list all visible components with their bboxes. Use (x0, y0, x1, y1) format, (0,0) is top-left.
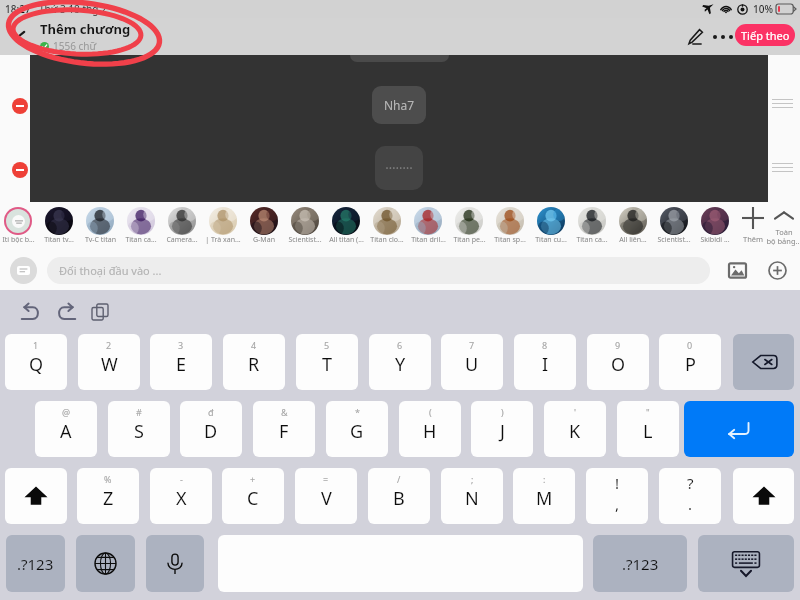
button[interactable]: " (617, 401, 679, 457)
button[interactable]: @ (35, 401, 97, 457)
button[interactable]: Đối thoại đầu vào ... (47, 257, 710, 284)
button[interactable]: Insert image (724, 257, 750, 283)
staticText: W (101, 352, 118, 377)
button[interactable] (332, 207, 360, 235)
staticText: Thêm (743, 234, 764, 244)
button[interactable]: 9 (587, 334, 649, 390)
button[interactable]: Shift (733, 468, 794, 524)
button[interactable]: ) (471, 401, 533, 457)
button[interactable]: Thêm (733, 205, 773, 249)
staticText: Thêm chương (40, 20, 131, 38)
button[interactable] (86, 207, 114, 235)
staticText: Camera... (166, 235, 198, 245)
button[interactable]: .?123 (6, 535, 65, 592)
button[interactable]: 2 (78, 334, 140, 390)
button[interactable]: % (77, 468, 139, 524)
button[interactable] (619, 207, 647, 235)
button[interactable]: / (368, 468, 430, 524)
button[interactable]: 5 (296, 334, 358, 390)
button[interactable]: ? (659, 468, 721, 524)
button[interactable] (209, 207, 237, 235)
button[interactable]: Shift (5, 468, 67, 524)
staticText: All titan (... (329, 235, 364, 245)
button[interactable]: + (222, 468, 284, 524)
button[interactable]: 0 (659, 334, 721, 390)
staticText: Titan ca... (576, 235, 608, 245)
button[interactable] (291, 207, 319, 235)
staticText: Toàn bộ bảng... (766, 227, 800, 246)
button[interactable] (414, 207, 442, 235)
button[interactable]: Reorder (772, 163, 793, 172)
button[interactable]: ; (441, 468, 503, 524)
staticText: Scientist... (657, 235, 691, 245)
button[interactable]: .?123 (593, 535, 687, 592)
button[interactable]: Change language (76, 535, 135, 592)
staticText: " (646, 406, 650, 418)
button[interactable]: Redo (52, 298, 80, 326)
button[interactable]: Voice input (146, 535, 204, 592)
button[interactable]: ( (399, 401, 461, 457)
button[interactable] (373, 207, 401, 235)
button[interactable]: : (513, 468, 575, 524)
button[interactable] (701, 207, 729, 235)
staticText: 3 (178, 339, 184, 351)
button[interactable]: Back (8, 24, 34, 50)
staticText: .?123 (17, 554, 54, 574)
button[interactable]: Edit (683, 24, 708, 49)
staticText: I (542, 352, 549, 377)
button[interactable]: Toàn bộ bảng... (762, 205, 800, 249)
staticText: L (643, 419, 653, 444)
button[interactable] (537, 207, 565, 235)
staticText: H (423, 419, 437, 444)
button[interactable]: 4 (223, 334, 285, 390)
staticText: - (180, 473, 183, 485)
button[interactable]: Backspace (733, 334, 794, 390)
staticText: A (60, 419, 72, 444)
staticText: M (536, 486, 553, 511)
button[interactable]: Remove line (12, 162, 28, 178)
button[interactable]: 3 (150, 334, 212, 390)
button[interactable]: Reorder (772, 99, 793, 108)
button[interactable] (578, 207, 606, 235)
button[interactable]: 1 (5, 334, 67, 390)
button[interactable]: Add (764, 257, 790, 283)
button[interactable]: More options (708, 24, 738, 49)
button[interactable]: Copy (86, 298, 114, 326)
button[interactable] (45, 207, 73, 235)
button[interactable]: * (326, 401, 388, 457)
button[interactable]: Undo (16, 298, 44, 326)
button[interactable]: Remove line (12, 98, 28, 114)
button[interactable] (660, 207, 688, 235)
staticText: 9 (615, 339, 621, 351)
button[interactable] (496, 207, 524, 235)
button[interactable]: = (295, 468, 357, 524)
staticText: ) (501, 406, 504, 418)
staticText: F (279, 419, 289, 444)
button[interactable] (375, 146, 423, 190)
button[interactable] (4, 207, 32, 235)
button[interactable]: ! (586, 468, 648, 524)
button[interactable] (250, 207, 278, 235)
button[interactable]: đ (180, 401, 242, 457)
staticText: 18:27 (5, 2, 31, 16)
staticText: 1 (33, 339, 39, 351)
button[interactable]: Dialogue type (10, 257, 37, 284)
button[interactable]: Hide keyboard (698, 535, 794, 592)
button[interactable]: 8 (514, 334, 576, 390)
button[interactable]: Nha7 (372, 86, 426, 124)
staticText: ' (574, 406, 577, 418)
button[interactable] (127, 207, 155, 235)
staticText: V (321, 486, 332, 511)
button[interactable]: 6 (369, 334, 431, 390)
button[interactable]: ' (544, 401, 606, 457)
button[interactable]: Tiếp theo (735, 24, 795, 46)
button[interactable]: Enter (684, 401, 794, 457)
staticText: đ (208, 406, 214, 418)
button[interactable] (455, 207, 483, 235)
button[interactable] (168, 207, 196, 235)
button[interactable]: - (150, 468, 212, 524)
button[interactable]: & (253, 401, 315, 457)
button[interactable]: 7 (441, 334, 503, 390)
button[interactable]: # (108, 401, 170, 457)
